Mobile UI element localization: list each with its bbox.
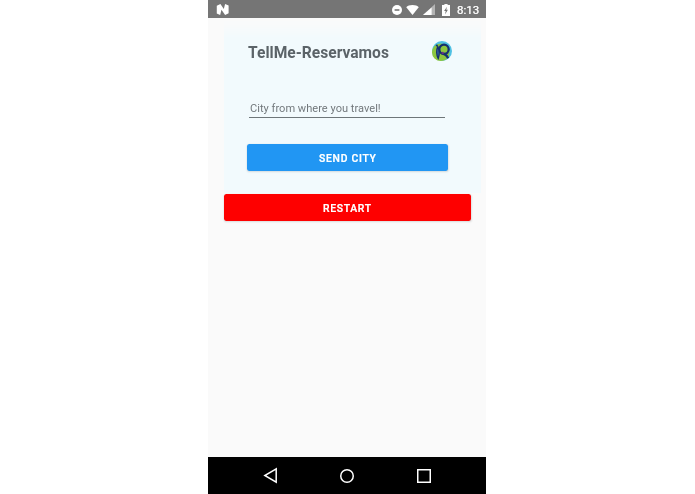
staticText: RESTART — [323, 202, 372, 214]
staticText: 8:13 — [457, 3, 480, 16]
button[interactable]: SEND CITY — [247, 144, 448, 171]
staticText: City from where you travel! — [250, 102, 381, 115]
button[interactable]: Recent apps — [406, 464, 442, 487]
button[interactable]: RESTART — [224, 194, 471, 221]
button[interactable]: City from where you travel! — [249, 96, 445, 118]
staticText: TellMe-Reservamos — [248, 44, 389, 62]
button[interactable]: Home — [329, 464, 365, 487]
staticText: SEND CITY — [319, 152, 377, 164]
button[interactable]: Back — [252, 464, 288, 487]
